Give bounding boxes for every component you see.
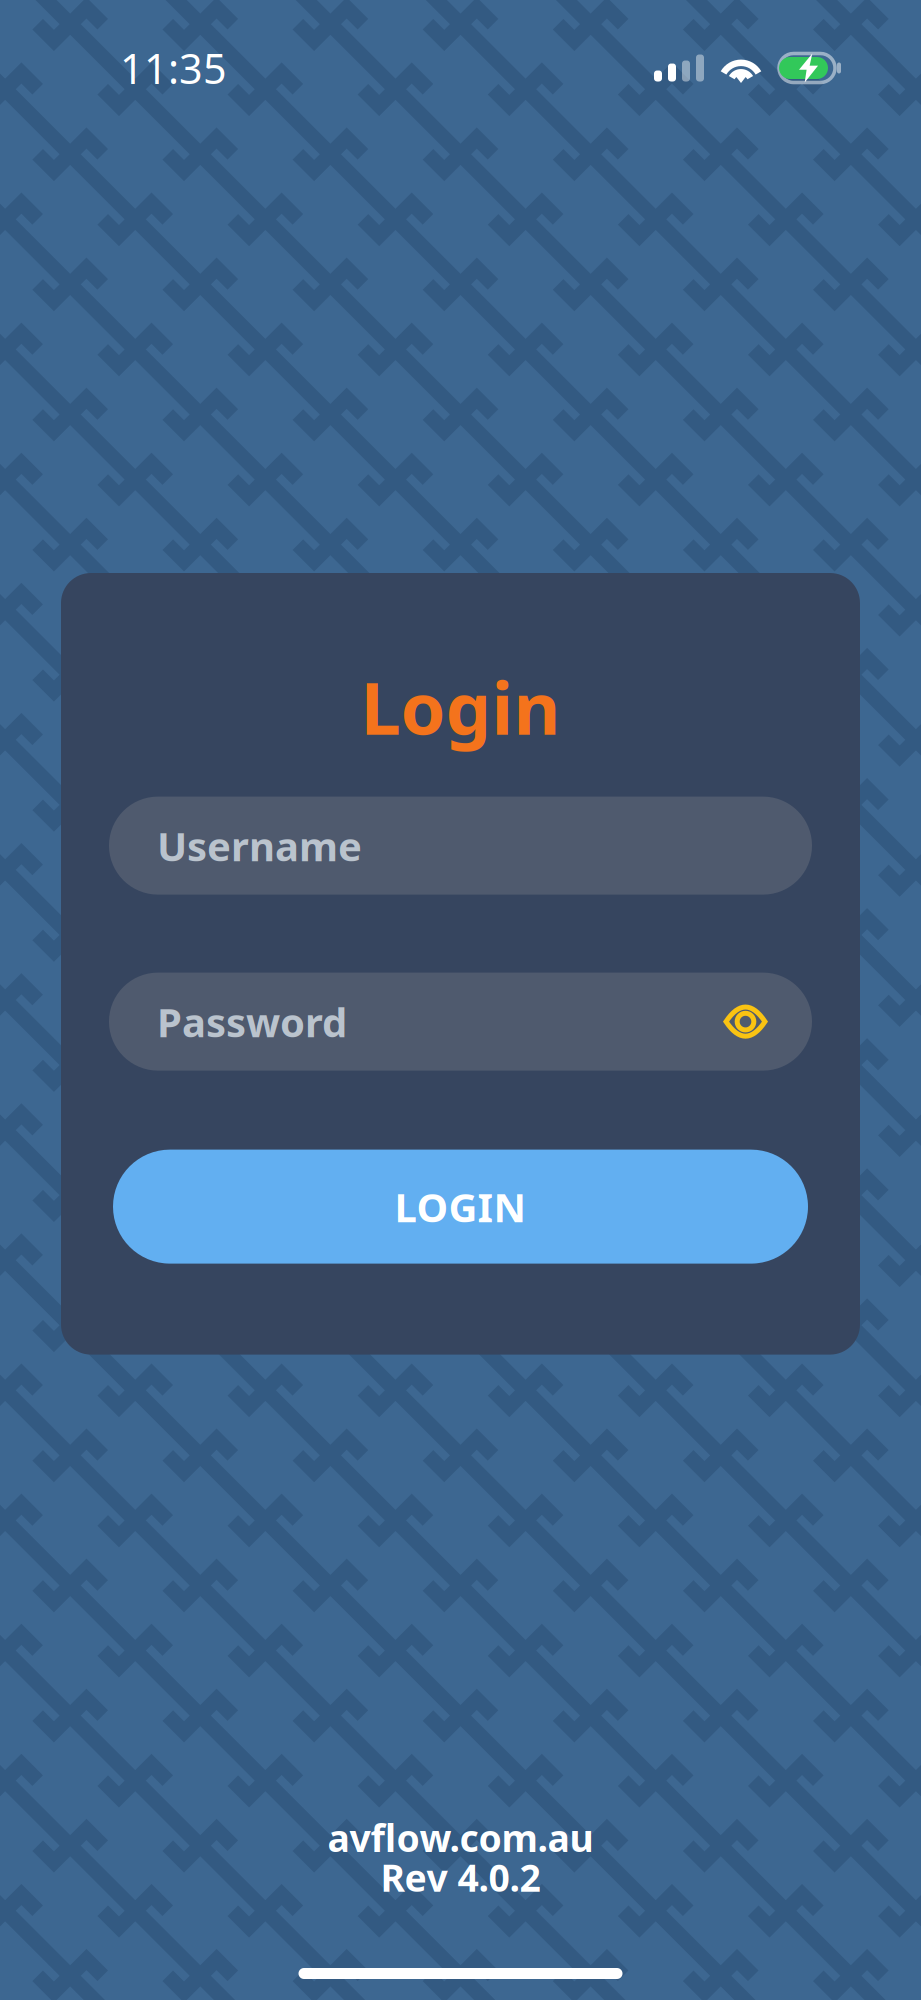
staticText: 11:35 <box>120 41 227 95</box>
button[interactable]: LOGIN <box>113 1150 808 1264</box>
staticText: Username <box>157 819 362 872</box>
staticText: Login <box>360 659 560 755</box>
button[interactable]: Password <box>109 973 812 1071</box>
staticText: Password <box>157 995 347 1048</box>
staticText: Rev 4.0.2 <box>380 1852 540 1902</box>
staticText: LOGIN <box>394 1180 526 1233</box>
button[interactable]: Username <box>109 797 812 895</box>
staticText: avflow.com.au <box>327 1813 593 1862</box>
